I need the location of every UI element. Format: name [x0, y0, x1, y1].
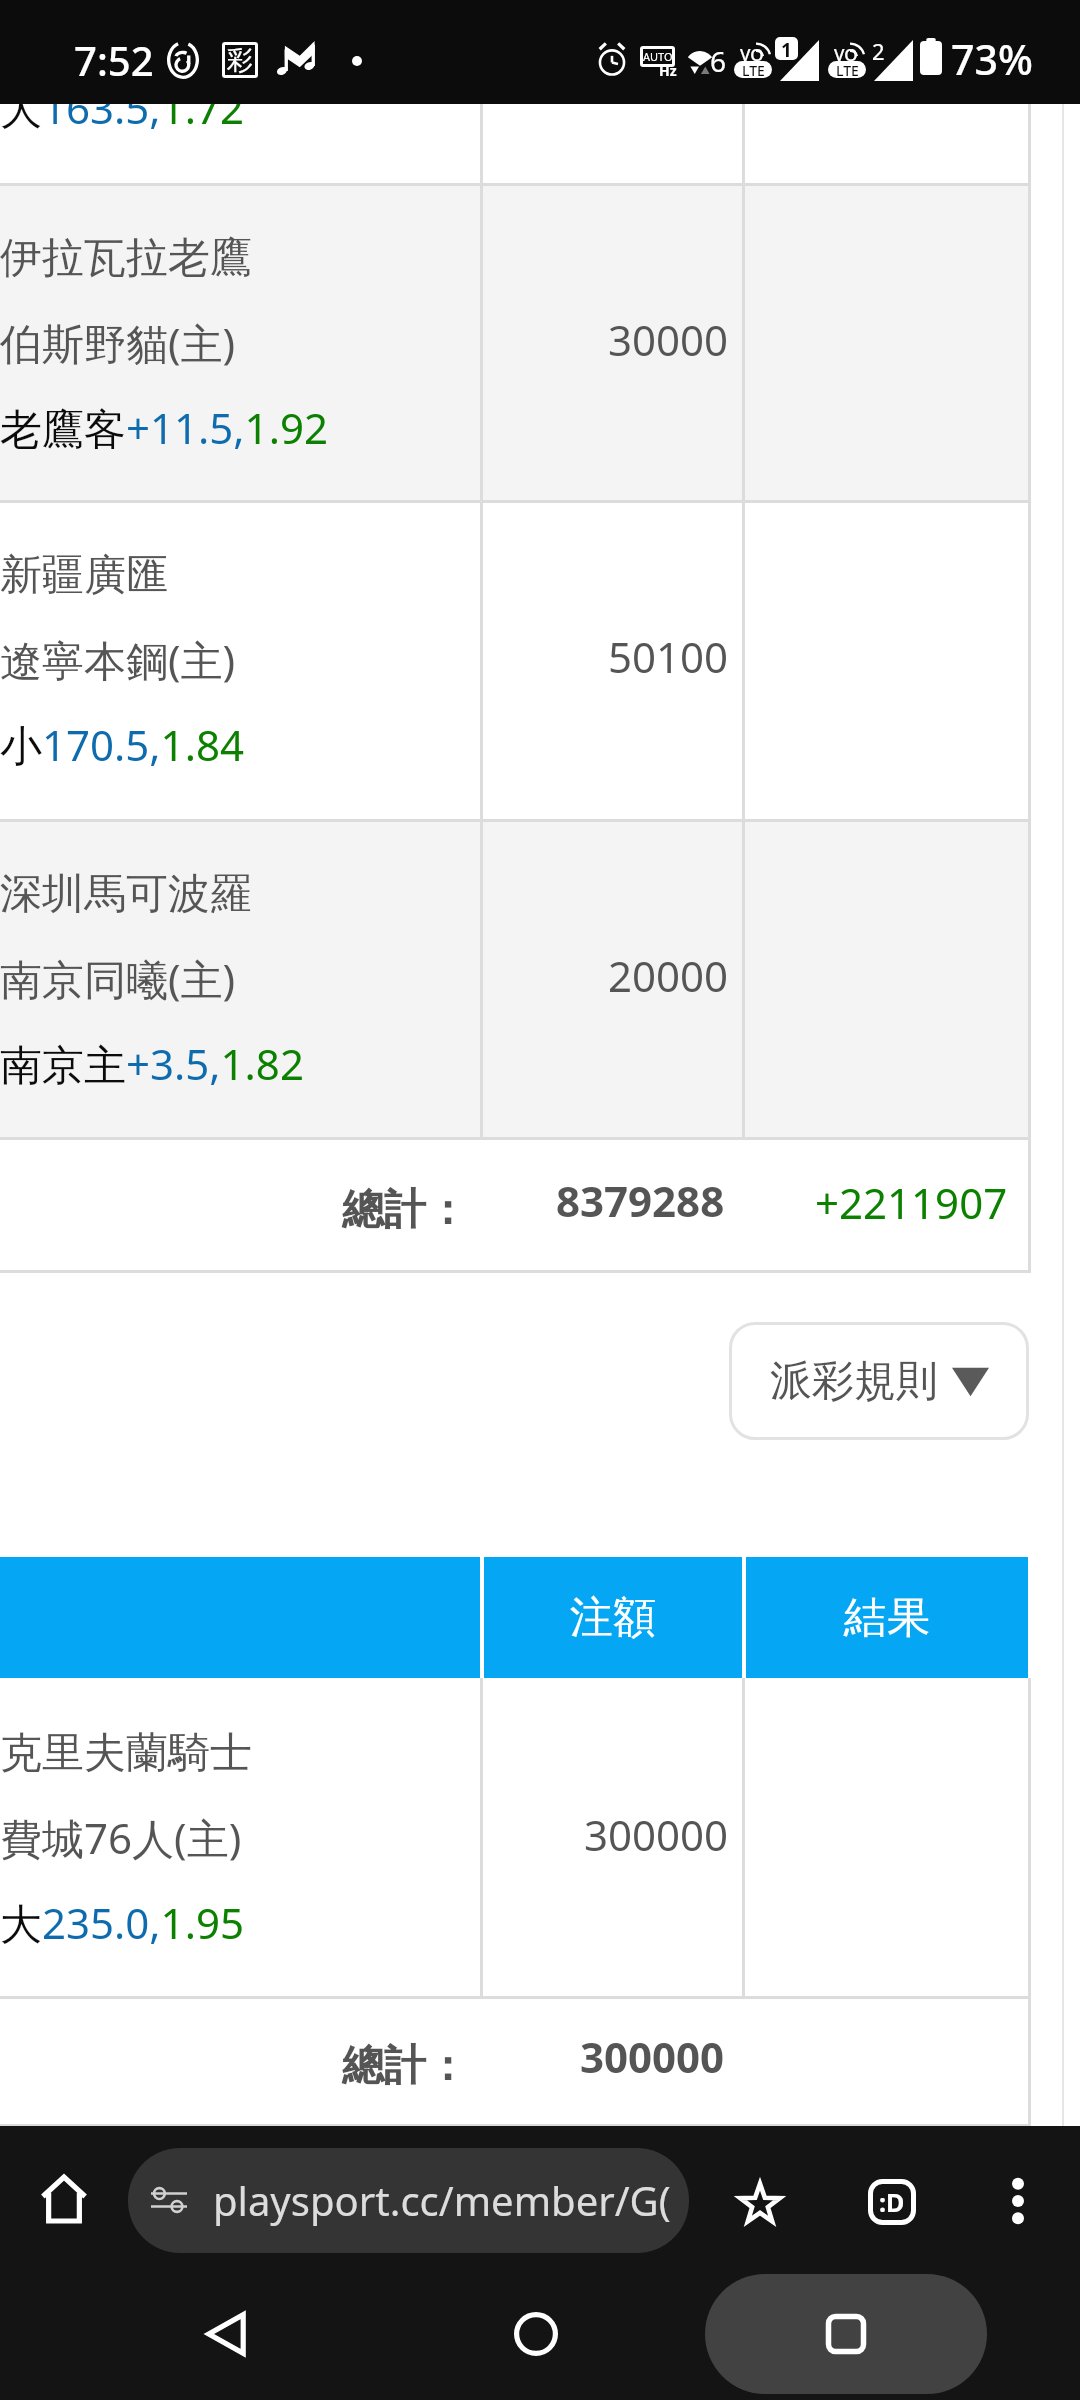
button[interactable]: 派彩規則 — [729, 1322, 1029, 1440]
staticText: :D — [879, 2185, 905, 2219]
staticText: LTE — [742, 61, 765, 78]
staticText: 結果 — [844, 1591, 930, 1645]
staticText: 新疆廣匯 — [0, 549, 168, 602]
staticText: 300000 — [584, 1806, 729, 1863]
button[interactable]: Tabs — [862, 2172, 922, 2232]
staticText: VO — [740, 43, 764, 66]
staticText: 派彩規則 — [770, 1355, 938, 1408]
staticText: 2 — [872, 36, 885, 66]
staticText: 30000 — [608, 311, 729, 368]
staticText: 1 — [781, 37, 792, 60]
button[interactable]: playsport.cc/member/G( — [128, 2148, 689, 2253]
staticText: 大163.5,1.72 — [0, 79, 244, 136]
staticText: AUTO — [643, 49, 673, 64]
button[interactable]: Bookmark — [730, 2173, 790, 2233]
staticText: 8379288 — [556, 1172, 725, 1229]
staticText: 克里夫蘭騎士 — [0, 1727, 252, 1780]
staticText: 注額 — [570, 1591, 656, 1645]
staticText: 73% — [951, 31, 1033, 87]
button[interactable]: 克里夫蘭騎士 — [0, 1680, 1028, 1996]
staticText: 6 — [710, 42, 727, 78]
button[interactable]: 深圳馬可波羅 — [0, 821, 1028, 1137]
button[interactable]: Recent apps — [705, 2274, 987, 2394]
staticText: 300000 — [580, 2028, 725, 2085]
staticText: VO — [834, 43, 858, 66]
button[interactable]: 新疆廣匯 — [0, 502, 1028, 818]
staticText: 小170.5,1.84 — [0, 716, 244, 773]
staticText: 總計： — [342, 1184, 468, 1237]
staticText: 老鷹客+11.5,1.92 — [0, 399, 328, 456]
staticText: 南京主+3.5,1.82 — [0, 1035, 304, 1092]
staticText: 伊拉瓦拉老鷹 — [0, 232, 252, 285]
staticText: 遼寧本鋼(主) — [0, 631, 236, 688]
button[interactable]: 伊拉瓦拉老鷹 — [0, 185, 1028, 501]
button[interactable]: Back — [178, 2286, 274, 2382]
staticText: 費城76人(主) — [0, 1809, 242, 1866]
staticText: 50100 — [608, 628, 729, 685]
button[interactable]: More options — [990, 2173, 1046, 2229]
staticText: 南京同曦(主) — [0, 950, 236, 1007]
staticText: 20000 — [608, 947, 729, 1004]
staticText: 總計： — [342, 2040, 468, 2093]
staticText: playsport.cc/member/G( — [213, 2173, 671, 2227]
staticText: Hz — [659, 61, 677, 80]
staticText: 7:52 — [74, 33, 154, 87]
staticText: 彩 — [227, 44, 253, 77]
staticText: 深圳馬可波羅 — [0, 868, 252, 921]
staticText: +2211907 — [815, 1174, 1008, 1231]
button[interactable]: Home — [35, 2170, 93, 2228]
button[interactable]: Home screen — [488, 2286, 584, 2382]
staticText: 大235.0,1.95 — [0, 1894, 244, 1951]
staticText: LTE — [836, 61, 859, 78]
staticText: 伯斯野貓(主) — [0, 314, 236, 371]
